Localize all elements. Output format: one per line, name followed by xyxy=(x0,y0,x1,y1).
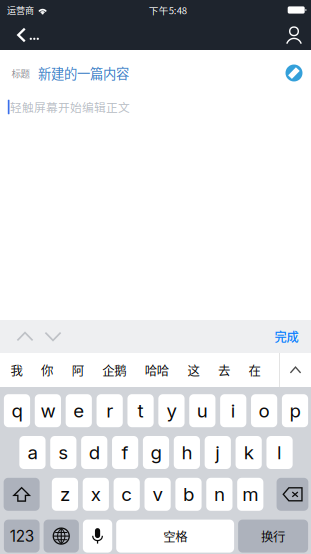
staticText: 空格 xyxy=(163,527,187,545)
button[interactable]: Back xyxy=(0,20,47,50)
button[interactable]: p xyxy=(282,394,308,427)
staticText: c xyxy=(121,483,132,506)
staticText: r xyxy=(106,399,113,422)
staticText: l xyxy=(277,441,282,464)
staticText: 在 xyxy=(249,361,261,379)
button[interactable]: y xyxy=(158,394,185,427)
staticText: 企鹅 xyxy=(102,361,126,379)
button[interactable]: h xyxy=(174,436,200,469)
button[interactable]: 完成 xyxy=(274,320,311,353)
staticText: 新建的一篇内容 xyxy=(38,63,129,83)
staticText: i xyxy=(231,399,236,422)
staticText: v xyxy=(153,483,163,506)
staticText: 这 xyxy=(187,361,199,379)
button[interactable]: l xyxy=(266,436,293,469)
button[interactable]: 在 xyxy=(249,353,261,387)
button[interactable]: Delete xyxy=(277,478,308,511)
button[interactable]: 企鹅 xyxy=(102,353,126,387)
staticText: 阿 xyxy=(72,361,84,379)
staticText: b xyxy=(183,483,194,506)
button[interactable]: d xyxy=(81,436,107,469)
staticText: 哈哈 xyxy=(145,361,169,379)
button[interactable]: f xyxy=(112,436,138,469)
staticText: p xyxy=(289,399,300,422)
button[interactable]: 阿 xyxy=(72,353,84,387)
button[interactable]: 新建的一篇内容 xyxy=(38,63,129,83)
button[interactable]: Edit title xyxy=(285,64,302,81)
staticText: x xyxy=(91,483,101,506)
staticText: 完成 xyxy=(274,328,298,345)
staticText: s xyxy=(58,441,68,464)
button[interactable]: a xyxy=(19,436,45,469)
button[interactable]: u xyxy=(189,394,215,427)
button[interactable]: m xyxy=(237,478,263,511)
staticText: 123 xyxy=(10,527,34,545)
button[interactable]: e xyxy=(66,394,92,427)
button[interactable]: c xyxy=(114,478,140,511)
button[interactable]: 你 xyxy=(41,353,53,387)
button[interactable]: Expand candidates xyxy=(280,353,311,387)
staticText: o xyxy=(259,399,270,422)
staticText: 我 xyxy=(10,361,22,379)
staticText: n xyxy=(214,483,225,506)
button[interactable]: z xyxy=(52,478,78,511)
button[interactable]: Dictation xyxy=(83,520,112,553)
staticText: y xyxy=(166,399,176,422)
staticText: u xyxy=(197,399,208,422)
staticText: d xyxy=(89,441,100,464)
button[interactable]: 我 xyxy=(10,353,22,387)
staticText: a xyxy=(27,441,37,464)
button[interactable]: i xyxy=(220,394,246,427)
button[interactable]: 123 xyxy=(4,520,40,553)
staticText: 换行 xyxy=(261,527,285,545)
staticText: f xyxy=(122,441,129,464)
staticText: g xyxy=(150,441,161,464)
button[interactable]: n xyxy=(206,478,232,511)
staticText: 运营商 xyxy=(7,3,34,16)
button[interactable]: s xyxy=(50,436,76,469)
button[interactable]: Next keyboard xyxy=(44,520,79,553)
button[interactable]: v xyxy=(144,478,171,511)
button[interactable]: Account xyxy=(278,20,311,50)
button[interactable]: r xyxy=(97,394,123,427)
staticText: q xyxy=(11,399,22,422)
staticText: 去 xyxy=(218,361,230,379)
button[interactable]: k xyxy=(236,436,262,469)
button[interactable]: q xyxy=(4,394,30,427)
button[interactable]: 这 xyxy=(187,353,199,387)
button[interactable]: w xyxy=(35,394,61,427)
button[interactable]: Shift xyxy=(4,478,40,511)
button[interactable]: x xyxy=(83,478,109,511)
staticText: w xyxy=(40,399,55,422)
button[interactable]: j xyxy=(205,436,231,469)
staticText: j xyxy=(215,441,220,464)
staticText: k xyxy=(244,441,254,464)
button[interactable]: o xyxy=(251,394,277,427)
button[interactable]: 空格 xyxy=(116,520,234,553)
staticText: z xyxy=(60,483,70,506)
button[interactable]: 去 xyxy=(218,353,230,387)
staticText: 轻触屏幕开始编辑正文 xyxy=(10,98,130,115)
button[interactable]: 换行 xyxy=(238,520,308,553)
button[interactable]: b xyxy=(175,478,202,511)
button[interactable]: t xyxy=(127,394,154,427)
button[interactable]: 哈哈 xyxy=(145,353,169,387)
staticText: h xyxy=(181,441,192,464)
staticText: 标题 xyxy=(11,66,29,80)
staticText: t xyxy=(138,399,144,422)
staticText: e xyxy=(73,399,84,422)
staticText: 你 xyxy=(41,361,53,379)
button[interactable]: Next field xyxy=(39,320,67,353)
staticText: m xyxy=(242,483,258,506)
button[interactable]: Previous field xyxy=(11,320,39,353)
button[interactable]: g xyxy=(143,436,169,469)
staticText: 下午5:48 xyxy=(149,3,187,17)
